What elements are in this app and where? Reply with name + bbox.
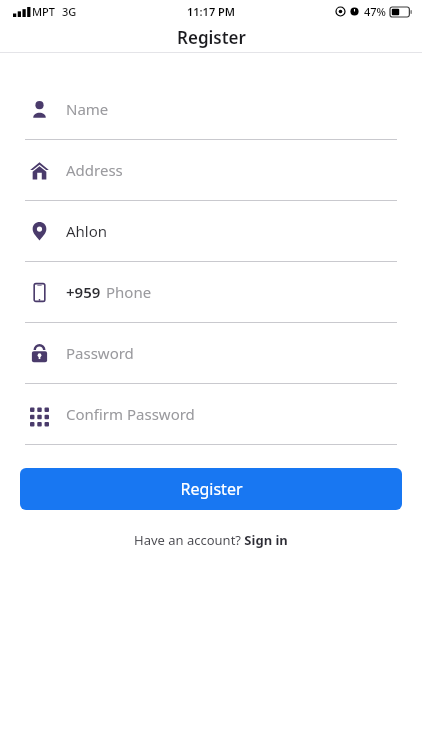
staticText: Register xyxy=(180,478,243,500)
staticText: Address xyxy=(66,160,123,180)
staticText: 11:17 PM xyxy=(187,4,236,19)
staticText: Name xyxy=(66,99,109,119)
staticText: 3G xyxy=(62,4,77,19)
staticText: Phone xyxy=(106,282,152,302)
staticText: 47% xyxy=(364,4,386,19)
staticText: Ahlon xyxy=(66,221,108,241)
staticText: Confirm Password xyxy=(66,404,195,424)
button[interactable]: Have an account? Sign in xyxy=(126,529,296,551)
staticText: Password xyxy=(66,343,134,363)
button[interactable]: +959 xyxy=(0,262,422,323)
staticText: Register xyxy=(177,26,246,49)
button[interactable]: Address xyxy=(0,140,422,201)
button[interactable]: Password xyxy=(0,323,422,384)
button[interactable]: Confirm Password xyxy=(0,384,422,445)
staticText: +959 xyxy=(66,282,101,302)
button[interactable]: Register xyxy=(20,468,402,510)
button[interactable]: Ahlon xyxy=(0,201,422,262)
button[interactable]: Name xyxy=(0,79,422,140)
staticText: MPT xyxy=(32,4,55,19)
staticText: Have an account? Sign in xyxy=(134,531,288,549)
